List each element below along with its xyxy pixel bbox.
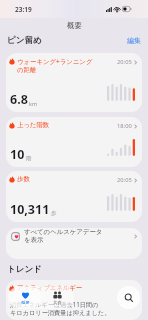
staticText: すべてのヘルスケアデータ を表示 bbox=[24, 228, 103, 244]
staticText: 編集 bbox=[127, 36, 141, 45]
button[interactable]: 検索 bbox=[117, 286, 140, 309]
staticText: 共有 bbox=[53, 300, 62, 305]
staticText: 階 bbox=[26, 155, 32, 162]
button[interactable]: 上った階数 bbox=[6, 117, 142, 167]
button[interactable]: 共有 bbox=[41, 287, 73, 308]
button[interactable]: 概要 bbox=[9, 287, 41, 308]
staticText: ピン留め bbox=[7, 35, 42, 46]
staticText: 20:05 bbox=[117, 176, 132, 184]
staticText: トレンド bbox=[7, 264, 42, 275]
staticText: ウォーキング+ランニング の距離 bbox=[17, 57, 93, 74]
button[interactable]: ウォーキング+ランニング の距離 bbox=[6, 53, 142, 112]
staticText: アクティブエネルギー bbox=[17, 284, 83, 292]
staticText: 20:05 bbox=[117, 58, 132, 66]
staticText: 歩 bbox=[51, 210, 57, 217]
staticText: 10 bbox=[10, 146, 25, 163]
button[interactable]: 編集 bbox=[127, 36, 148, 45]
staticText: km bbox=[29, 100, 38, 107]
staticText: 23:19 bbox=[15, 5, 32, 14]
staticText: 10,311 bbox=[10, 201, 50, 218]
staticText: 概要 bbox=[67, 21, 82, 30]
staticText: 消費エネルギーは過去11日間の キロカロリー消費量は抑えました。 bbox=[10, 300, 111, 317]
staticText: 上った階数 bbox=[17, 121, 50, 129]
staticText: 歩数 bbox=[17, 175, 30, 183]
staticText: 概要 bbox=[21, 300, 30, 305]
staticText: 18:00 bbox=[117, 122, 132, 130]
button[interactable]: アクティブエネルギー bbox=[6, 280, 142, 320]
staticText: 6.8 bbox=[10, 91, 28, 108]
button[interactable]: すべてのヘルスケアデータ を表示 bbox=[6, 228, 142, 259]
button[interactable]: 歩数 bbox=[6, 171, 142, 222]
